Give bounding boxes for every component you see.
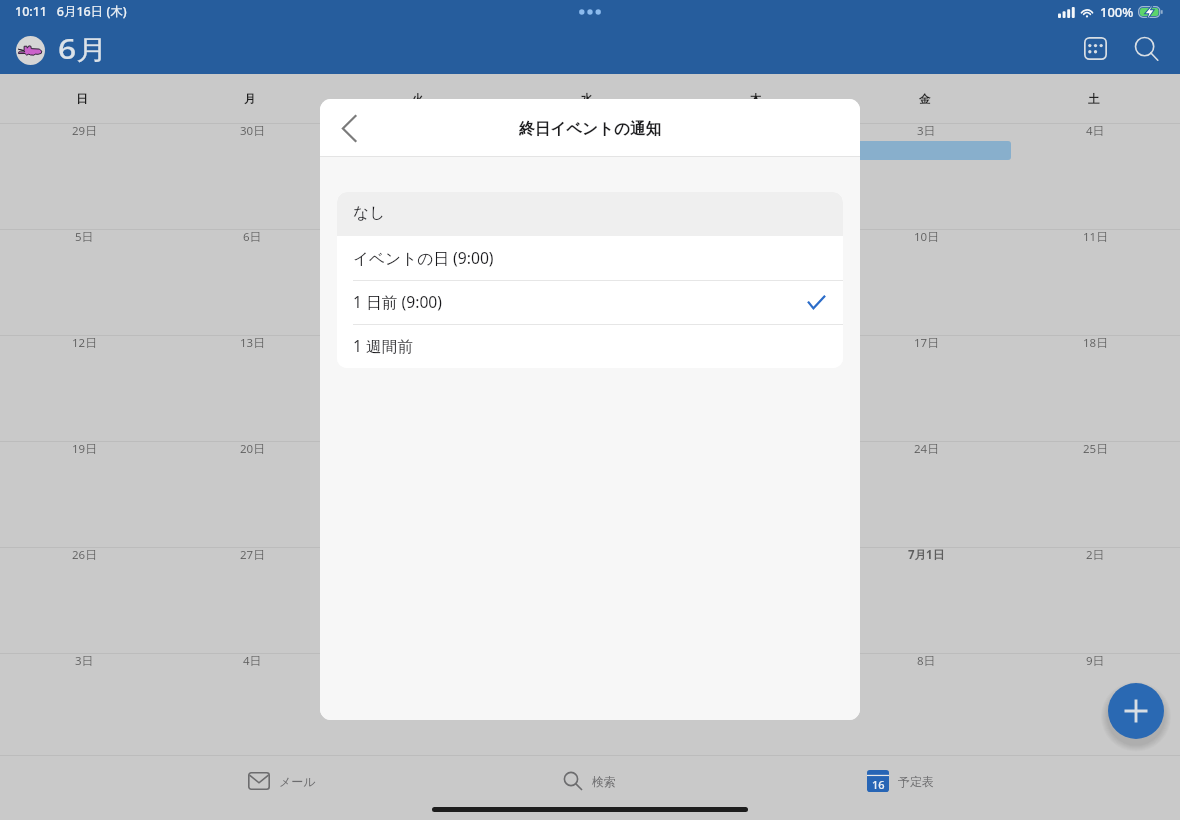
- staticText: 24日: [914, 441, 939, 457]
- button[interactable]: 1 日前 (9:00): [337, 280, 843, 324]
- staticText: 金: [919, 92, 931, 106]
- staticText: 8日: [917, 653, 936, 669]
- button[interactable]: 7月1日: [842, 547, 1011, 653]
- staticText: 7月1日: [908, 547, 945, 563]
- button[interactable]: 29日: [0, 123, 168, 229]
- button[interactable]: 1日: [504, 123, 673, 229]
- button[interactable]: 9日: [1011, 653, 1180, 755]
- button[interactable]: 6日: [168, 229, 336, 335]
- button[interactable]: 5日: [336, 653, 504, 755]
- staticText: 火: [412, 92, 424, 106]
- staticText: 月: [244, 92, 256, 106]
- button[interactable]: 3日: [0, 653, 168, 755]
- button[interactable]: 27日: [168, 547, 336, 653]
- button[interactable]: 16: [825, 763, 975, 799]
- staticText: 3日: [75, 653, 94, 669]
- button[interactable]: イベントの日 (9:00): [337, 236, 843, 280]
- staticText: 5日: [75, 229, 94, 245]
- staticText: 27日: [240, 547, 265, 563]
- button[interactable]: Back: [326, 105, 372, 151]
- staticText: 2日: [1086, 547, 1105, 563]
- button[interactable]: 検索: [521, 763, 671, 799]
- button[interactable]: 6日: [504, 653, 673, 755]
- staticText: 4日: [1086, 123, 1105, 139]
- staticText: 6日: [243, 229, 262, 245]
- staticText: 30日: [240, 123, 265, 139]
- button[interactable]: 20日: [168, 441, 336, 547]
- staticText: イベントの日 (9:00): [353, 247, 494, 268]
- staticText: 25日: [1083, 441, 1108, 457]
- staticText: 予定表: [898, 774, 934, 789]
- staticText: 10:11 6月16日 (木): [15, 3, 127, 20]
- button[interactable]: 7日: [673, 653, 842, 755]
- button[interactable]: Search: [1126, 31, 1164, 69]
- button[interactable]: 14日: [336, 335, 504, 441]
- button[interactable]: 15日: [504, 335, 673, 441]
- button[interactable]: メール: [206, 763, 356, 799]
- button[interactable]: なし: [337, 192, 843, 236]
- button[interactable]: 18日: [1011, 335, 1180, 441]
- button[interactable]: 9日: [673, 229, 842, 335]
- staticText: 7日: [411, 229, 430, 245]
- staticText: 29日: [72, 123, 97, 139]
- button[interactable]: 13日: [168, 335, 336, 441]
- button[interactable]: 24日: [842, 441, 1011, 547]
- staticText: 17日: [914, 335, 939, 351]
- staticText: 12日: [72, 335, 97, 351]
- button[interactable]: 5日: [0, 229, 168, 335]
- button[interactable]: 11日: [1011, 229, 1180, 335]
- staticText: 26日: [72, 547, 97, 563]
- button[interactable]: 4日: [1011, 123, 1180, 229]
- staticText: 4日: [243, 653, 262, 669]
- button[interactable]: Account: [16, 36, 45, 65]
- staticText: メール: [279, 774, 316, 789]
- staticText: 木: [750, 92, 762, 106]
- button[interactable]: 4日: [168, 653, 336, 755]
- button[interactable]: 8日: [842, 653, 1011, 755]
- button[interactable]: 1 週間前: [337, 324, 843, 368]
- staticText: 3日: [917, 123, 936, 139]
- button[interactable]: View options: [1076, 31, 1114, 69]
- button[interactable]: 10日: [842, 229, 1011, 335]
- staticText: 13日: [240, 335, 265, 351]
- button[interactable]: Add event: [1108, 683, 1164, 739]
- button[interactable]: 3日: [842, 123, 1011, 229]
- staticText: 1日: [579, 123, 598, 139]
- staticText: 土: [1088, 92, 1100, 106]
- button[interactable]: 17日: [842, 335, 1011, 441]
- button[interactable]: 2日: [1011, 547, 1180, 653]
- button[interactable]: 19日: [0, 441, 168, 547]
- staticText: 16: [872, 777, 885, 792]
- staticText: なし: [353, 203, 386, 223]
- button[interactable]: 25日: [1011, 441, 1180, 547]
- staticText: 1 日前 (9:00): [353, 291, 443, 312]
- staticText: 終日イベントの通知: [519, 119, 662, 139]
- button[interactable]: 30日: [168, 123, 336, 229]
- button[interactable]: 16日: [673, 335, 842, 441]
- button[interactable]: 7日: [336, 229, 504, 335]
- button[interactable]: 12日: [0, 335, 168, 441]
- staticText: 20日: [240, 441, 265, 457]
- button[interactable]: 8日: [504, 229, 673, 335]
- staticText: 1 週間前: [353, 335, 414, 356]
- button[interactable]: 2日: [673, 123, 842, 229]
- button[interactable]: 26日: [0, 547, 168, 653]
- button[interactable]: 31日: [336, 123, 504, 229]
